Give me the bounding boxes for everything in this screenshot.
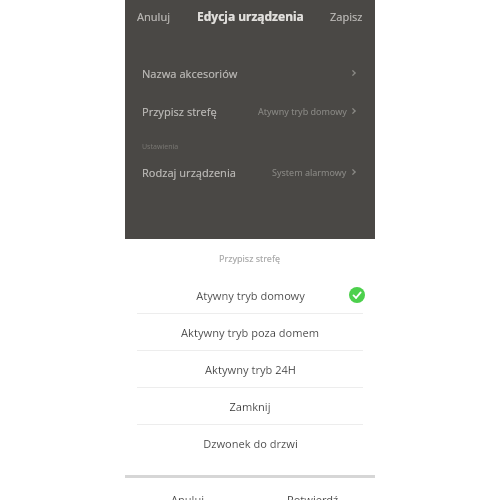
staticText: Zapisz <box>330 9 363 24</box>
staticText: Anuluj <box>137 9 171 24</box>
button[interactable]: Przypisz strefę <box>125 97 375 125</box>
staticText: Rodzaj urządzenia <box>142 165 236 180</box>
staticText: Przypisz strefę <box>142 104 217 119</box>
button[interactable]: Atywny tryb domowy <box>125 277 375 313</box>
staticText: Edycja urządzenia <box>197 8 304 24</box>
staticText: Atywny tryb domowy <box>196 288 305 303</box>
button[interactable]: Zamknij <box>125 388 375 424</box>
staticText: Potwierdź <box>287 492 339 500</box>
staticText: Atywny tryb domowy <box>258 105 347 117</box>
button[interactable]: Dzwonek do drzwi <box>125 425 375 461</box>
button[interactable]: Aktywny tryb poza domem <box>125 314 375 350</box>
button[interactable]: Anuluj <box>125 478 250 500</box>
staticText: Nazwa akcesoriów <box>142 66 238 81</box>
button[interactable]: Nazwa akcesoriów <box>125 59 375 87</box>
staticText: Aktywny tryb poza domem <box>181 325 319 340</box>
staticText: Przypisz strefę <box>219 252 281 264</box>
button[interactable]: Anuluj <box>125 3 183 30</box>
other: Selected <box>349 287 365 303</box>
button[interactable]: Aktywny tryb 24H <box>125 351 375 387</box>
button[interactable]: Potwierdź <box>250 478 375 500</box>
staticText: Zamknij <box>229 399 271 414</box>
button[interactable]: Rodzaj urządzenia <box>125 158 375 186</box>
staticText: Anuluj <box>171 492 205 500</box>
button[interactable]: Zapisz <box>318 3 375 30</box>
staticText: System alarmowy <box>272 166 347 178</box>
staticText: Ustawienia <box>142 142 179 152</box>
staticText: Aktywny tryb 24H <box>205 362 296 377</box>
staticText: Dzwonek do drzwi <box>203 436 298 451</box>
